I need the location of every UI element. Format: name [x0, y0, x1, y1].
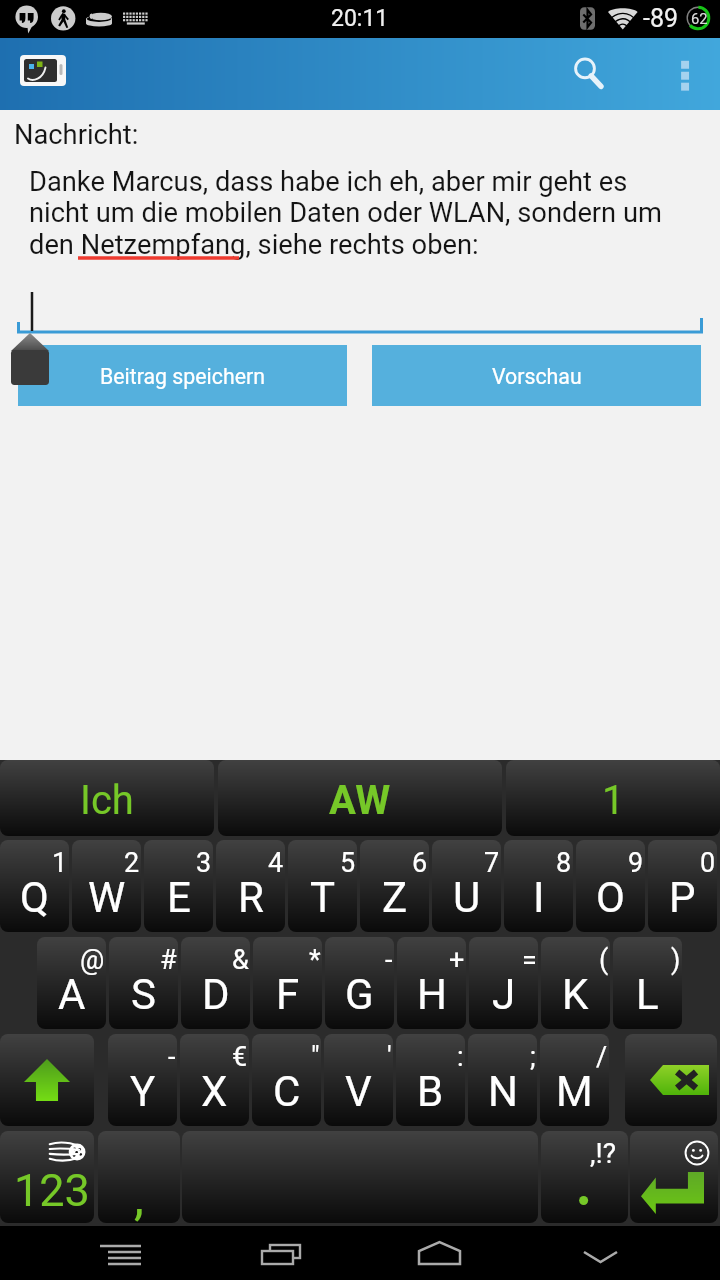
staticText: nicht um die mobilen Daten oder WLAN, so…	[29, 197, 662, 229]
staticText: ,!?	[590, 1137, 616, 1170]
button[interactable]: A	[37, 937, 106, 1029]
staticText: /	[596, 1041, 608, 1073]
button[interactable]: Y	[108, 1034, 177, 1126]
staticText: Beitrag speichern	[100, 364, 265, 389]
button[interactable]: K	[541, 937, 610, 1029]
staticText: Z	[382, 873, 408, 922]
button[interactable]: F	[253, 937, 322, 1029]
button[interactable]: E	[144, 840, 213, 932]
staticText: G	[345, 970, 374, 1019]
button[interactable]: ,	[98, 1131, 180, 1223]
staticText: @	[80, 944, 105, 976]
button[interactable]: AW	[218, 760, 502, 836]
button[interactable]	[0, 1034, 94, 1126]
button[interactable]: Vorschau	[372, 345, 701, 406]
staticText: €	[232, 1041, 248, 1073]
staticText: :	[457, 1041, 464, 1073]
staticText: )	[671, 944, 681, 976]
staticText: I	[533, 873, 545, 922]
button[interactable]: W	[72, 840, 141, 932]
button[interactable]: X	[180, 1034, 249, 1126]
staticText: Nachricht:	[14, 119, 139, 151]
staticText: 1	[52, 847, 68, 879]
button[interactable]: Menu	[60, 1226, 180, 1280]
staticText: S	[131, 970, 156, 1019]
button[interactable]: Home	[380, 1226, 500, 1280]
button[interactable]: Q	[0, 840, 69, 932]
button[interactable]: O	[576, 840, 645, 932]
staticText: R	[238, 873, 264, 922]
button[interactable]	[625, 1034, 717, 1126]
button[interactable]: More options	[650, 38, 720, 110]
button[interactable]: M	[540, 1034, 609, 1126]
staticText: Ich	[80, 777, 134, 824]
staticText: -89	[643, 4, 679, 33]
staticText: U	[453, 873, 481, 922]
staticText: 2	[124, 847, 140, 879]
staticText: L	[636, 970, 659, 1019]
staticText: E	[167, 873, 191, 922]
staticText: Danke Marcus, dass habe ich eh, aber mir…	[29, 166, 628, 198]
button[interactable]: Hide keyboard	[540, 1226, 660, 1280]
button[interactable]: B	[396, 1034, 465, 1126]
staticText: O	[596, 873, 625, 922]
button[interactable]	[630, 1131, 718, 1223]
button[interactable]	[182, 1131, 538, 1223]
staticText: ;	[530, 1041, 536, 1073]
button[interactable]: Beitrag speichern	[18, 345, 347, 406]
staticText: V	[345, 1067, 372, 1116]
staticText: J	[492, 970, 516, 1019]
staticText: 1	[602, 777, 625, 824]
staticText: (	[599, 944, 609, 976]
button[interactable]: J	[469, 937, 538, 1029]
button[interactable]: Ich	[0, 760, 214, 836]
staticText: -	[385, 944, 393, 976]
staticText: W	[88, 873, 126, 922]
staticText: "	[311, 1041, 320, 1073]
staticText: B	[417, 1067, 444, 1116]
staticText: 0	[700, 847, 716, 879]
staticText: 9	[628, 847, 644, 879]
button[interactable]: P	[648, 840, 717, 932]
button[interactable]: Recent apps	[220, 1226, 340, 1280]
staticText: den Netzempfang, siehe rechts oben:	[29, 229, 479, 261]
staticText: 7	[484, 847, 500, 879]
staticText: D	[202, 970, 230, 1019]
button[interactable]: D	[181, 937, 250, 1029]
staticText: +	[449, 944, 465, 976]
button[interactable]: 1	[506, 760, 720, 836]
button[interactable]: C	[252, 1034, 321, 1126]
button[interactable]: N	[468, 1034, 537, 1126]
button[interactable]: I	[504, 840, 573, 932]
staticText: AW	[329, 777, 391, 824]
staticText: *	[309, 944, 321, 976]
staticText: A	[58, 970, 86, 1019]
staticText: -	[168, 1041, 176, 1073]
button[interactable]: G	[325, 937, 394, 1029]
staticText: K	[562, 970, 589, 1019]
button[interactable]: T	[288, 840, 357, 932]
staticText: 5	[340, 847, 356, 879]
button[interactable]: Search	[556, 38, 622, 110]
staticText: C	[273, 1067, 301, 1116]
staticText: M	[556, 1067, 593, 1116]
button[interactable]: U	[432, 840, 501, 932]
staticText: X	[201, 1067, 228, 1116]
staticText: 62	[691, 10, 708, 27]
button[interactable]: 123	[0, 1131, 94, 1223]
staticText: T	[310, 873, 336, 922]
staticText: F	[276, 970, 300, 1019]
staticText: ,	[134, 1168, 144, 1223]
button[interactable]: ,!?	[541, 1131, 628, 1223]
staticText: Q	[20, 873, 49, 922]
staticText: =	[522, 944, 537, 976]
button[interactable]: Z	[360, 840, 429, 932]
button[interactable]: H	[397, 937, 466, 1029]
button[interactable]: V	[324, 1034, 393, 1126]
button[interactable]: R	[216, 840, 285, 932]
staticText: P	[669, 873, 696, 922]
button[interactable]: S	[109, 937, 178, 1029]
button[interactable]: App icon	[14, 46, 72, 102]
button[interactable]: L	[613, 937, 682, 1029]
staticText: #	[160, 944, 177, 976]
